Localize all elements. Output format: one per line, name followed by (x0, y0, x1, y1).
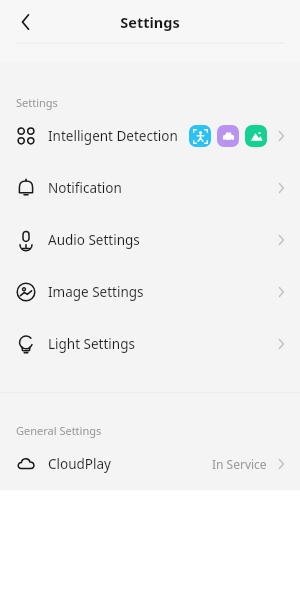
staticText: Intelligent Detection (48, 127, 178, 145)
button[interactable]: Image Settings (0, 266, 300, 318)
button[interactable]: Back (10, 6, 42, 38)
button[interactable]: Audio Settings (0, 214, 300, 266)
button[interactable]: Intelligent Detection (0, 110, 300, 162)
staticText: General Settings (16, 423, 102, 438)
staticText: Light Settings (48, 335, 135, 353)
staticText: Notification (48, 179, 122, 197)
staticText: Settings (16, 95, 58, 110)
staticText: Image Settings (48, 283, 144, 301)
staticText: Settings (120, 12, 180, 32)
staticText: CloudPlay (48, 455, 111, 473)
staticText: Audio Settings (48, 231, 140, 249)
button[interactable]: Light Settings (0, 318, 300, 370)
button[interactable]: CloudPlay (0, 438, 300, 490)
staticText: In Service (212, 456, 267, 472)
button[interactable]: Notification (0, 162, 300, 214)
